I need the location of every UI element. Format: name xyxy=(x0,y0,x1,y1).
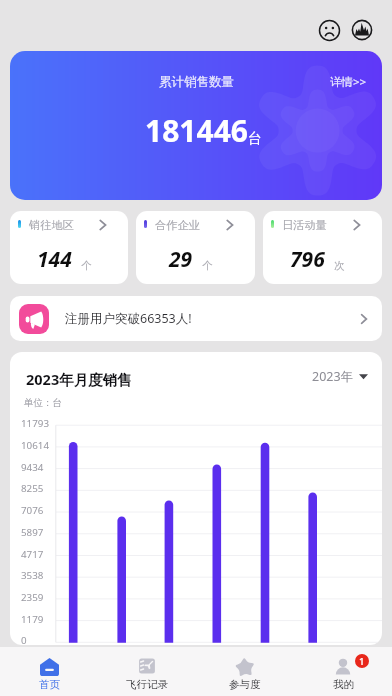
staticText: 次 xyxy=(334,259,345,272)
staticText: 181446 xyxy=(145,110,248,151)
staticText: 1 xyxy=(359,655,365,668)
staticText: 4717 xyxy=(21,548,44,561)
staticText: 11793 xyxy=(21,417,50,430)
staticText: 2359 xyxy=(21,591,44,604)
staticText: 9434 xyxy=(21,461,44,474)
button[interactable]: 参与度 xyxy=(196,647,294,696)
staticText: 累计销售数量 xyxy=(159,74,234,90)
button[interactable]: Feedback xyxy=(318,19,341,42)
staticText: 10614 xyxy=(21,439,50,452)
button[interactable]: 1 xyxy=(294,647,392,696)
staticText: 销往地区 xyxy=(29,218,74,232)
staticText: 2023年 xyxy=(312,368,354,385)
button[interactable]: 累计销售数量 xyxy=(10,51,382,200)
staticText: 飞行记录 xyxy=(126,678,168,691)
staticText: 144 xyxy=(37,245,72,274)
staticText: 单位：台 xyxy=(24,397,62,409)
button[interactable]: 合作企业 xyxy=(136,211,255,284)
staticText: 合作企业 xyxy=(155,218,200,232)
staticText: 个 xyxy=(202,259,213,272)
button[interactable]: 首页 xyxy=(0,647,98,696)
staticText: 台 xyxy=(248,130,262,148)
staticText: 3538 xyxy=(21,569,44,582)
staticText: 0 xyxy=(21,634,27,645)
staticText: 详情>> xyxy=(330,74,367,90)
staticText: 首页 xyxy=(39,678,60,691)
staticText: 29 xyxy=(169,245,193,274)
staticText: 2023年月度销售 xyxy=(26,369,132,389)
button[interactable]: 注册用户突破66353人! xyxy=(10,296,382,341)
staticText: 我的 xyxy=(333,678,354,691)
staticText: 8255 xyxy=(21,482,44,495)
staticText: 个 xyxy=(81,259,92,272)
button[interactable]: 销往地区 xyxy=(10,211,128,284)
staticText: 5897 xyxy=(21,526,44,539)
staticText: 1179 xyxy=(21,613,44,626)
button[interactable]: Activity xyxy=(351,19,373,41)
button[interactable]: 飞行记录 xyxy=(98,647,196,696)
staticText: 796 xyxy=(290,245,325,274)
staticText: 日活动量 xyxy=(282,218,327,232)
staticText: 参与度 xyxy=(229,678,261,691)
staticText: 7076 xyxy=(21,504,44,517)
button[interactable]: 2023年 xyxy=(312,368,368,385)
staticText: 注册用户突破66353人! xyxy=(65,310,192,327)
button[interactable]: 日活动量 xyxy=(263,211,382,284)
button[interactable]: 详情>> xyxy=(330,73,367,90)
